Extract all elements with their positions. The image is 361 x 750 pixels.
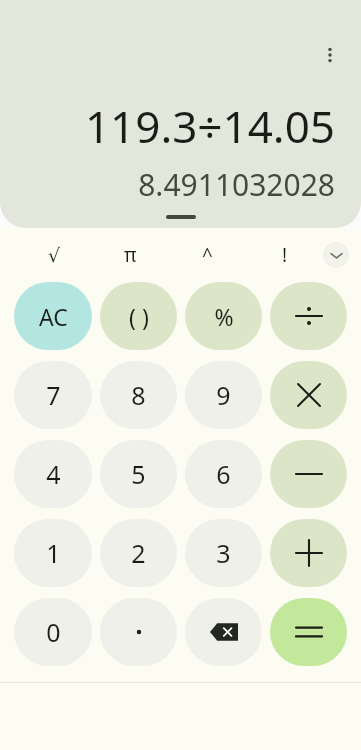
button[interactable]: % xyxy=(185,282,262,350)
staticText: √ xyxy=(48,244,61,266)
staticText: AC xyxy=(39,301,68,332)
staticText: 0 xyxy=(46,615,61,649)
button[interactable]: ! xyxy=(246,228,323,282)
button[interactable]: ^ xyxy=(169,228,246,282)
staticText: 2 xyxy=(131,536,146,570)
staticText: 119.3÷14.05 xyxy=(18,96,335,156)
button[interactable]: 9 xyxy=(185,361,262,429)
button[interactable]: Backspace xyxy=(185,598,262,666)
button[interactable]: Multiply xyxy=(270,361,347,429)
button[interactable]: Decimal point xyxy=(100,598,177,666)
button[interactable]: 6 xyxy=(185,440,262,508)
button[interactable]: 3 xyxy=(185,519,262,587)
staticText: 8.4911032028 xyxy=(18,164,335,205)
staticText: 8 xyxy=(131,378,146,412)
staticText: 6 xyxy=(216,457,231,491)
button[interactable]: 7 xyxy=(14,361,92,429)
button[interactable]: Minus xyxy=(270,440,347,508)
button[interactable] xyxy=(166,215,196,219)
button[interactable]: 8 xyxy=(100,361,177,429)
staticText: 3 xyxy=(216,536,231,570)
button[interactable]: √ xyxy=(16,228,92,282)
staticText: 5 xyxy=(131,457,146,491)
button[interactable]: ( ) xyxy=(100,282,177,350)
button[interactable]: 1 xyxy=(14,519,92,587)
button[interactable]: π xyxy=(92,228,169,282)
staticText: 1 xyxy=(46,536,61,570)
button[interactable]: 4 xyxy=(14,440,92,508)
button[interactable]: Equals xyxy=(270,598,347,666)
staticText: ^ xyxy=(202,242,213,268)
staticText: % xyxy=(214,301,234,332)
button[interactable]: 0 xyxy=(14,598,92,666)
button[interactable]: Plus xyxy=(270,519,347,587)
button[interactable]: 2 xyxy=(100,519,177,587)
staticText: 4 xyxy=(46,457,61,491)
staticText: 7 xyxy=(46,378,61,412)
staticText: 9 xyxy=(216,378,231,412)
button[interactable]: More options xyxy=(311,36,349,74)
button[interactable]: 5 xyxy=(100,440,177,508)
button[interactable]: AC xyxy=(14,282,92,350)
staticText: π xyxy=(124,242,137,268)
staticText: ( ) xyxy=(129,301,149,332)
button[interactable]: Divide xyxy=(270,282,347,350)
staticText: ! xyxy=(282,242,288,268)
button[interactable]: Expand xyxy=(323,242,349,268)
